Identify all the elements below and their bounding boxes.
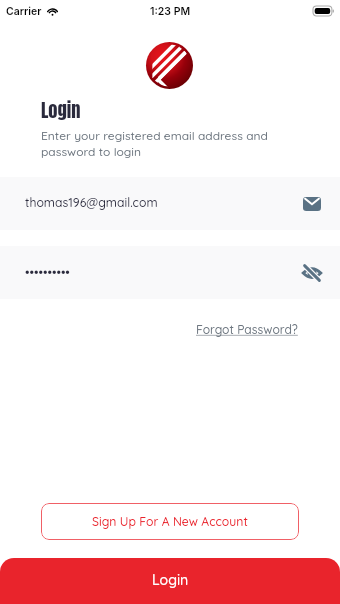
staticText: Login [152, 571, 189, 589]
staticText: •••••••••• [25, 264, 70, 280]
button[interactable]: Sign Up For A New Account [41, 503, 299, 540]
staticText: Carrier [6, 5, 42, 18]
staticText: thomas196@gmail.com [25, 195, 158, 210]
button[interactable]: Forgot Password? [195, 320, 299, 339]
staticText: Enter your registered email address and … [41, 128, 268, 159]
button[interactable]: •••••••••• [0, 246, 340, 299]
button[interactable]: thomas196@gmail.com [0, 177, 340, 230]
staticText: Login [41, 96, 81, 124]
button[interactable]: Show password [301, 262, 323, 284]
button[interactable]: Email [301, 193, 323, 215]
staticText: 1:23 PM [150, 5, 191, 18]
staticText: Forgot Password? [196, 322, 298, 337]
staticText: Sign Up For A New Account [92, 514, 248, 529]
button[interactable]: Login [0, 558, 340, 604]
